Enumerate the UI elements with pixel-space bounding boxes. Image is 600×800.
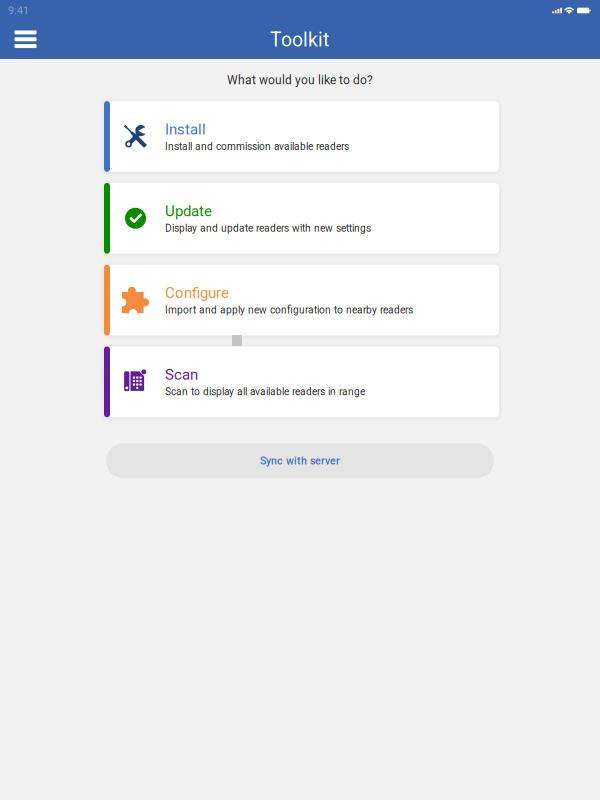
staticText: Display and update readers with new sett… xyxy=(165,222,371,234)
button[interactable]: Sync with server xyxy=(106,443,494,478)
button[interactable]: Configure xyxy=(104,265,499,335)
button[interactable]: Menu xyxy=(4,21,47,59)
staticText: Scan to display all available readers in… xyxy=(165,386,365,398)
staticText: Import and apply new configuration to ne… xyxy=(165,304,413,316)
staticText: Toolkit xyxy=(270,29,329,51)
button[interactable]: Install xyxy=(104,101,499,172)
staticText: Sync with server xyxy=(260,454,340,467)
staticText: What would you like to do? xyxy=(227,73,373,87)
staticText: Install xyxy=(165,120,206,138)
staticText: Update xyxy=(165,202,212,220)
staticText: Scan xyxy=(165,366,198,383)
button[interactable]: Scan xyxy=(104,346,499,417)
staticText: Install and commission available readers xyxy=(165,140,349,152)
staticText: 9:41 xyxy=(8,4,29,17)
button[interactable]: Update xyxy=(104,183,499,254)
staticText: Configure xyxy=(165,284,229,302)
